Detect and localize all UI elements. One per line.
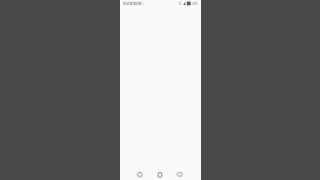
button[interactable]: Recents [174,166,201,180]
button[interactable]: Home [147,166,174,180]
button[interactable]: Back [120,166,147,180]
